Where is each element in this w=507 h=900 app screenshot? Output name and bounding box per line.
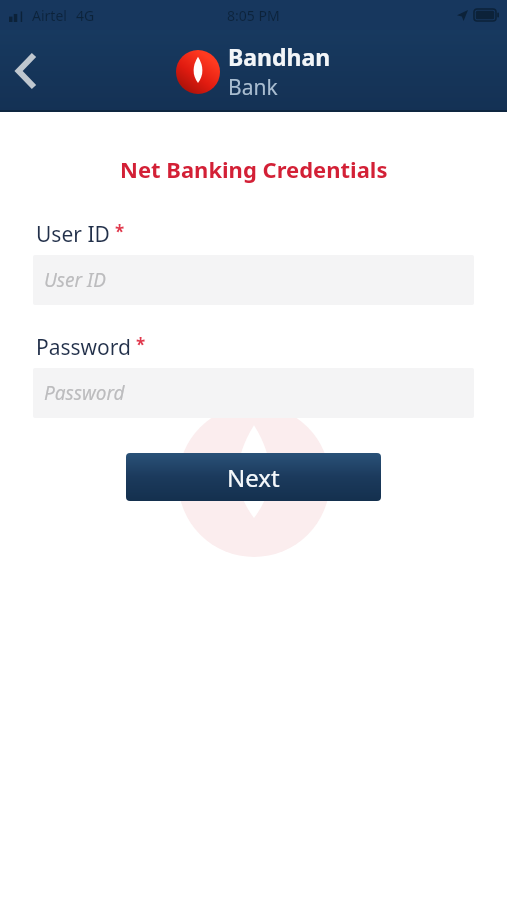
staticText: Bandhan: [228, 41, 331, 72]
staticText: Airtel: [32, 6, 67, 25]
button[interactable]: Back: [4, 48, 50, 94]
button[interactable]: User ID: [33, 255, 474, 305]
staticText: 4G: [76, 6, 95, 25]
staticText: *: [136, 333, 146, 356]
staticText: Password: [44, 380, 125, 406]
staticText: User ID: [36, 220, 110, 249]
staticText: 8:05 PM: [227, 6, 280, 25]
staticText: Bank: [228, 73, 278, 102]
staticText: User ID: [44, 267, 106, 293]
button[interactable]: Next: [126, 453, 381, 501]
staticText: *: [115, 220, 125, 243]
staticText: Next: [227, 461, 280, 494]
staticText: Password: [36, 333, 131, 362]
button[interactable]: Password: [33, 368, 474, 418]
staticText: Net Banking Credentials: [120, 154, 388, 184]
